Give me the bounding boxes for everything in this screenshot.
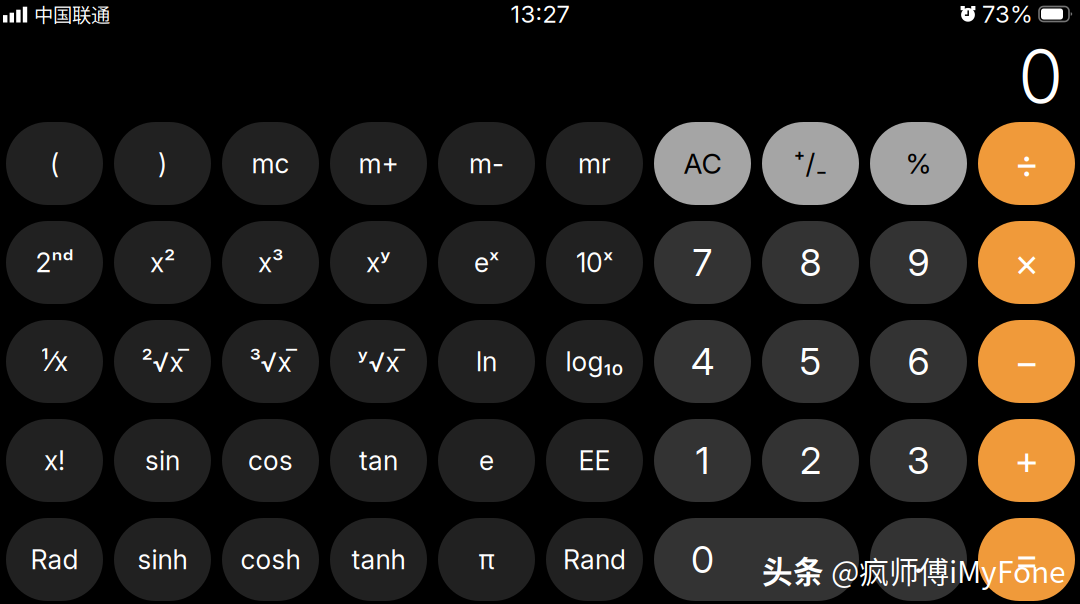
staticText: Rand [563, 543, 626, 576]
staticText: 1 [695, 438, 709, 483]
button[interactable]: tanh [330, 518, 427, 601]
button[interactable]: . [870, 518, 967, 601]
button[interactable]: Rad [6, 518, 103, 601]
button[interactable]: EE [546, 419, 643, 502]
button[interactable]: xʸ [330, 221, 427, 304]
button[interactable]: AC [654, 122, 751, 205]
staticText: cosh [240, 543, 300, 576]
staticText: m+ [358, 147, 398, 180]
staticText: 2ⁿᵈ [35, 246, 73, 279]
staticText: π [478, 543, 494, 576]
button[interactable]: 5 [762, 320, 859, 403]
button[interactable]: m+ [330, 122, 427, 205]
staticText: 6 [907, 339, 929, 384]
button[interactable]: Rand [546, 518, 643, 601]
button[interactable]: mr [546, 122, 643, 205]
button[interactable]: % [870, 122, 967, 205]
button[interactable]: 2ⁿᵈ [6, 221, 103, 304]
button[interactable]: ln [438, 320, 535, 403]
staticText: 9 [907, 240, 929, 285]
staticText: 4 [691, 339, 714, 384]
button[interactable]: 4 [654, 320, 751, 403]
button[interactable]: 1 [654, 419, 751, 502]
button[interactable]: x³ [222, 221, 319, 304]
button[interactable]: 8 [762, 221, 859, 304]
staticText: ⁺/₋ [793, 147, 827, 180]
staticText: ) [158, 147, 167, 180]
button[interactable]: tan [330, 419, 427, 502]
button[interactable]: cosh [222, 518, 319, 601]
staticText: % [905, 147, 931, 180]
button[interactable]: π [438, 518, 535, 601]
staticText: mc [251, 147, 289, 180]
button[interactable]: × [978, 221, 1075, 304]
staticText: 0 [691, 537, 714, 582]
button[interactable]: eˣ [438, 221, 535, 304]
staticText: x³ [258, 246, 283, 279]
staticText: sinh [137, 543, 187, 576]
button[interactable]: 3 [870, 419, 967, 502]
staticText: sin [145, 444, 180, 477]
staticText: − [1014, 338, 1038, 385]
button[interactable]: 10ˣ [546, 221, 643, 304]
staticText: eˣ [474, 246, 499, 279]
button[interactable]: ¹⁄x [6, 320, 103, 403]
staticText: e [479, 444, 494, 477]
button[interactable]: ⁺/₋ [762, 122, 859, 205]
button[interactable]: = [978, 518, 1075, 601]
staticText: AC [683, 147, 721, 180]
staticText: EE [578, 444, 610, 477]
staticText: ¹⁄x [41, 345, 68, 378]
staticText: ln [476, 345, 497, 378]
button[interactable]: 7 [654, 221, 751, 304]
staticText: x² [150, 246, 175, 279]
button[interactable]: 0 [654, 518, 859, 601]
staticText: × [1014, 239, 1038, 286]
button[interactable]: 2 [762, 419, 859, 502]
button[interactable]: e [438, 419, 535, 502]
button[interactable]: 6 [870, 320, 967, 403]
button[interactable]: x! [6, 419, 103, 502]
button[interactable]: log₁₀ [546, 320, 643, 403]
button[interactable]: sinh [114, 518, 211, 601]
staticText: 10ˣ [576, 246, 613, 279]
staticText: = [1014, 536, 1038, 583]
staticText: 13:27 [510, 0, 569, 28]
staticText: 5 [799, 339, 821, 384]
staticText: m- [469, 147, 504, 180]
staticText: 头条 [762, 548, 824, 592]
button[interactable]: ³√x̅ [222, 320, 319, 403]
staticText: mr [578, 147, 611, 180]
staticText: log₁₀ [565, 345, 623, 378]
staticText: . [914, 537, 923, 582]
button[interactable]: ( [6, 122, 103, 205]
staticText: tanh [351, 543, 405, 576]
button[interactable]: sin [114, 419, 211, 502]
staticText: @疯师傅iMyFone [831, 548, 1066, 592]
staticText: 中国联通 [34, 0, 110, 28]
button[interactable]: ) [114, 122, 211, 205]
staticText: ( [50, 147, 59, 180]
staticText: 7 [692, 240, 712, 285]
button[interactable]: ²√x̅ [114, 320, 211, 403]
staticText: ÷ [1014, 140, 1038, 187]
staticText: tan [359, 444, 398, 477]
staticText: ³√x̅ [249, 343, 291, 380]
staticText: 8 [799, 240, 821, 285]
button[interactable]: cos [222, 419, 319, 502]
staticText: ²√x̅ [141, 343, 183, 380]
staticText: Rad [30, 543, 78, 576]
button[interactable]: ÷ [978, 122, 1075, 205]
button[interactable]: ʸ√x̅ [330, 320, 427, 403]
staticText: ʸ√x̅ [357, 343, 399, 380]
button[interactable]: mc [222, 122, 319, 205]
button[interactable]: x² [114, 221, 211, 304]
button[interactable]: + [978, 419, 1075, 502]
staticText: + [1014, 437, 1038, 484]
staticText: 2 [800, 438, 821, 483]
button[interactable]: 9 [870, 221, 967, 304]
button[interactable]: m- [438, 122, 535, 205]
button[interactable]: − [978, 320, 1075, 403]
staticText: x! [44, 444, 65, 477]
staticText: 73% [982, 0, 1033, 28]
